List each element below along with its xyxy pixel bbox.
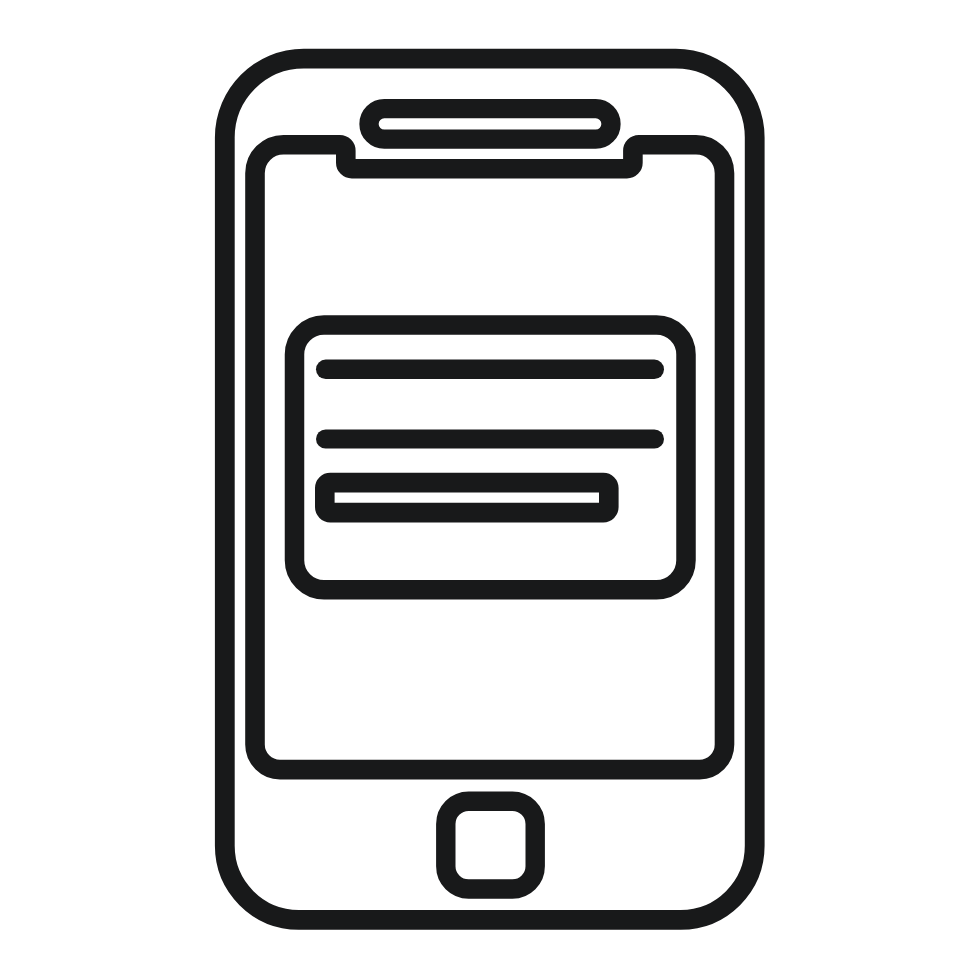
button[interactable]: Message card: [285, 315, 696, 599]
button[interactable]: Mobile app screen: [215, 49, 765, 930]
button[interactable]: Earpiece speaker: [359, 99, 620, 149]
button[interactable]: Text input field: [315, 473, 619, 523]
button[interactable]: Home button: [436, 792, 545, 899]
